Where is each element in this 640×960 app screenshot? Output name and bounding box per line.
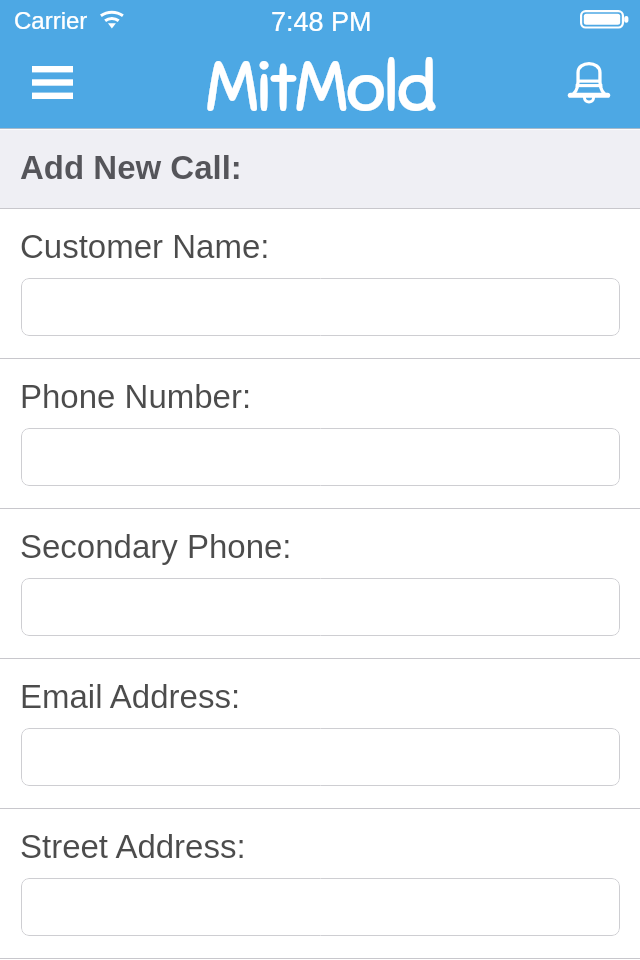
button[interactable] [21, 428, 620, 486]
button[interactable] [21, 578, 620, 636]
button[interactable] [21, 878, 620, 936]
staticText: Add New Call: [20, 149, 242, 186]
staticText: Phone Number: [20, 378, 252, 415]
button[interactable] [21, 728, 620, 786]
button[interactable]: Notifications [538, 40, 640, 128]
staticText: Carrier [14, 7, 88, 34]
staticText: Secondary Phone: [20, 528, 292, 565]
staticText: Customer Name: [20, 228, 270, 265]
staticText: 7:48 PM [271, 7, 372, 37]
button[interactable]: Menu [0, 40, 104, 128]
staticText: MitMold [206, 43, 435, 131]
staticText: Email Address: [20, 678, 241, 715]
button[interactable] [21, 278, 620, 336]
staticText: Street Address: [20, 828, 246, 865]
